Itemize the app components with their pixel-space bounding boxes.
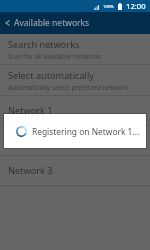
staticText: Automatically select preferred network <box>8 83 129 92</box>
staticText: Scan for all available networks <box>8 52 102 61</box>
staticText: 100% <box>103 3 114 9</box>
staticText: 12:00 <box>126 1 146 11</box>
staticText: Available networks <box>14 17 90 29</box>
staticText: Search networks <box>8 38 80 51</box>
button[interactable]: Select automatically <box>0 65 150 95</box>
staticText: Select automatically <box>8 69 95 82</box>
staticText: Network 2 <box>8 134 53 147</box>
button[interactable]: Search networks <box>0 34 150 64</box>
button[interactable]: Network 2 <box>0 126 150 155</box>
staticText: Registering on Network 1... <box>32 126 140 137</box>
staticText: Network 1 <box>8 104 53 117</box>
button[interactable]: Navigate up <box>0 12 14 34</box>
staticText: Network 3 <box>8 164 53 177</box>
button[interactable]: Network 3 <box>0 156 150 185</box>
button[interactable]: Network 1 <box>0 96 150 125</box>
